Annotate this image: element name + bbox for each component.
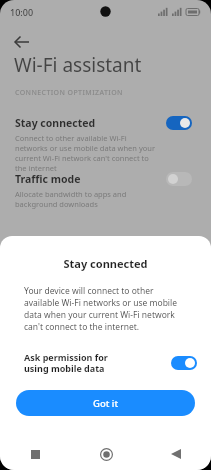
staticText: Ask permission for using mobile data [24, 351, 134, 374]
button[interactable]: Ask permission for using mobile data [0, 349, 211, 376]
button[interactable]: Traffic mode [0, 168, 211, 213]
staticText: Traffic mode [15, 172, 81, 186]
button[interactable]: Home [71, 438, 141, 470]
button[interactable]: Back [6, 26, 38, 58]
button[interactable]: Stay connected [0, 112, 211, 177]
staticText: Wi-Fi assistant [14, 52, 142, 78]
button[interactable]: Recents [0, 438, 71, 470]
button[interactable]: Got it [16, 390, 195, 416]
staticText: Your device will connect to other availa… [24, 285, 187, 333]
staticText: Got it [93, 397, 119, 410]
staticText: Stay connected [0, 256, 211, 271]
button[interactable]: Back [141, 438, 211, 470]
staticText: Allocate bandwidth to apps and backgroun… [15, 189, 160, 209]
staticText: CONNECTION OPTIMIZATION [15, 88, 123, 98]
staticText: Connect to other available Wi-Fi network… [15, 133, 160, 173]
staticText: 10:00 [10, 6, 34, 18]
staticText: Stay connected [15, 116, 96, 130]
